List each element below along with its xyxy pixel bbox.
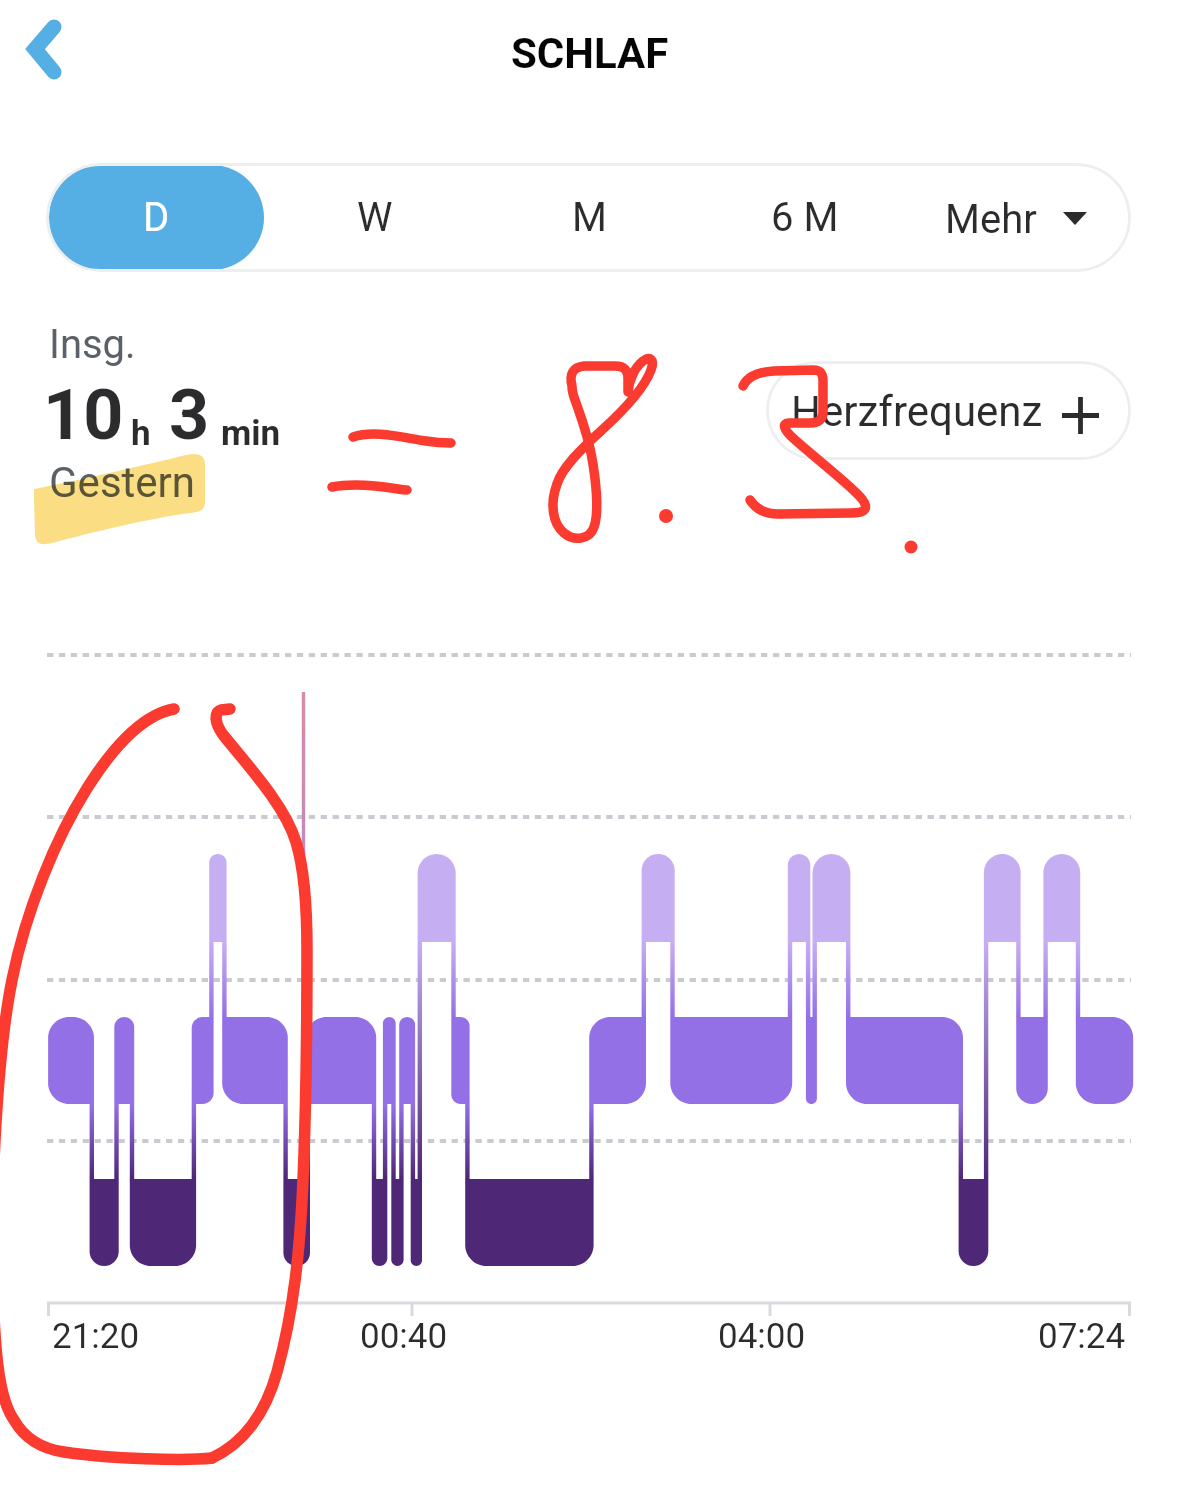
staticText: 21:20 [52,1316,140,1357]
button[interactable]: W [267,163,483,272]
staticText: M [572,194,607,241]
staticText: min [221,413,281,454]
button[interactable]: 6 M [697,163,913,272]
button[interactable]: M [481,163,697,272]
staticText: 07:24 [1038,1316,1126,1357]
button[interactable]: D [49,165,264,270]
staticText: 6 M [771,194,839,241]
staticText: 3 [169,374,210,456]
staticText: SCHLAF [511,29,669,78]
staticText: D [143,194,170,241]
staticText: Gestern [49,458,195,507]
staticText: 10 [43,374,124,456]
staticText: W [357,194,393,241]
staticText: Herzfrequenz [791,387,1043,436]
staticText: Insg. [49,321,136,368]
staticText: Mehr [945,196,1037,243]
staticText: 00:40 [360,1316,448,1357]
staticText: h [131,413,151,454]
staticText: 04:00 [718,1316,806,1357]
button[interactable]: Mehr [912,163,1131,272]
button[interactable]: Herzfrequenz [766,361,1131,460]
button[interactable]: Back [4,6,92,94]
